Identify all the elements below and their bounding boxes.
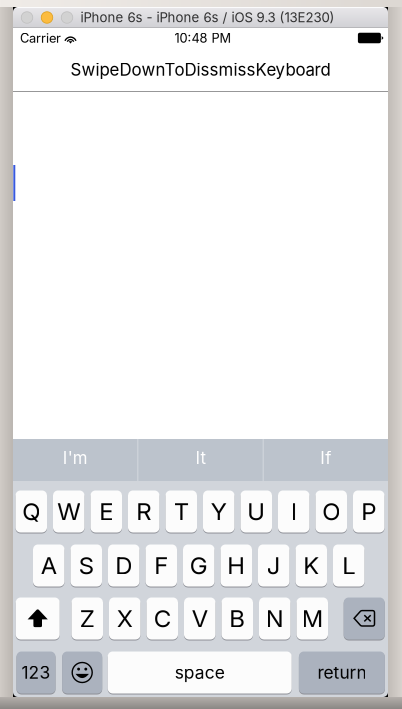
button[interactable]: B: [221, 597, 253, 640]
button[interactable]: J: [258, 544, 289, 587]
staticText: F: [154, 551, 168, 580]
button[interactable]: return: [299, 651, 385, 694]
staticText: P: [361, 497, 376, 526]
staticText: J: [267, 551, 281, 580]
staticText: L: [342, 551, 355, 580]
staticText: Q: [22, 497, 40, 526]
button[interactable]: Zoom: [61, 11, 73, 23]
staticText: S: [79, 551, 94, 580]
button[interactable]: G: [183, 544, 214, 587]
button[interactable]: E: [90, 490, 122, 533]
button[interactable]: U: [240, 490, 272, 533]
button[interactable]: Z: [71, 597, 103, 640]
staticText: D: [115, 551, 132, 580]
button[interactable]: Shift: [16, 597, 60, 640]
button[interactable]: Delete: [344, 597, 385, 640]
button[interactable]: W: [53, 490, 84, 533]
staticText: return: [317, 662, 366, 683]
staticText: U: [247, 497, 265, 526]
button[interactable]: A: [33, 544, 64, 587]
staticText: Z: [80, 604, 95, 633]
staticText: iPhone 6s - iPhone 6s / iOS 9.3 (13E230): [80, 9, 334, 25]
button[interactable]: T: [165, 490, 197, 533]
button[interactable]: X: [109, 597, 140, 640]
button[interactable]: Y: [203, 490, 234, 533]
staticText: V: [192, 604, 208, 633]
staticText: 123: [21, 662, 50, 683]
button[interactable]: K: [295, 544, 327, 587]
button[interactable]: D: [108, 544, 139, 587]
staticText: W: [57, 497, 80, 526]
staticText: G: [190, 551, 208, 580]
staticText: K: [303, 551, 319, 580]
staticText: 10:48 PM: [174, 30, 231, 46]
button[interactable]: C: [146, 597, 178, 640]
button[interactable]: V: [184, 597, 215, 640]
staticText: T: [174, 497, 189, 526]
button[interactable]: N: [259, 597, 290, 640]
staticText: N: [266, 604, 284, 633]
staticText: R: [136, 497, 151, 526]
button[interactable]: Q: [15, 490, 47, 533]
button[interactable]: M: [296, 597, 328, 640]
button[interactable]: Close: [21, 11, 33, 23]
staticText: O: [322, 497, 340, 526]
button[interactable]: I'm: [13, 439, 137, 481]
staticText: space: [175, 662, 225, 683]
staticText: X: [117, 604, 133, 633]
staticText: M: [302, 604, 323, 633]
button[interactable]: It: [138, 439, 263, 481]
staticText: C: [154, 604, 171, 633]
staticText: B: [229, 604, 245, 633]
staticText: H: [227, 551, 245, 580]
button[interactable]: O: [315, 490, 347, 533]
staticText: It: [195, 448, 205, 468]
button[interactable]: If: [264, 439, 388, 481]
button[interactable]: S: [70, 544, 102, 587]
button[interactable]: 123: [16, 651, 55, 694]
button[interactable]: Emoji: [62, 651, 102, 694]
staticText: SwipeDownToDissmissKeyboard: [70, 60, 330, 80]
staticText: I: [291, 497, 297, 526]
staticText: If: [320, 448, 331, 468]
button[interactable]: I: [278, 490, 309, 533]
button[interactable]: L: [333, 544, 364, 587]
staticText: Carrier: [20, 30, 61, 46]
button[interactable]: F: [145, 544, 177, 587]
button[interactable]: Minimize: [41, 11, 53, 23]
button[interactable]: H: [220, 544, 252, 587]
staticText: Y: [211, 497, 227, 526]
button[interactable]: space: [108, 651, 292, 694]
staticText: I'm: [63, 448, 88, 468]
staticText: A: [41, 551, 57, 580]
staticText: E: [99, 497, 113, 526]
button[interactable]: P: [353, 490, 384, 533]
button[interactable]: R: [128, 490, 159, 533]
